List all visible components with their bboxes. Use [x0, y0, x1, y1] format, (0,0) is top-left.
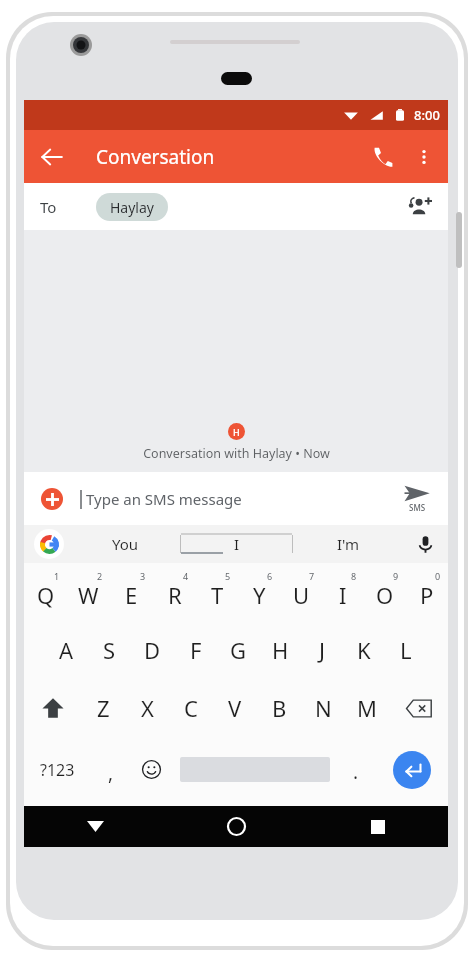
staticText: K: [357, 635, 371, 665]
staticText: Z: [97, 693, 110, 723]
button[interactable]: Enter: [375, 737, 448, 802]
staticText: J: [319, 635, 326, 665]
staticText: 2: [97, 570, 103, 582]
staticText: SMS: [409, 502, 426, 513]
button[interactable]: I'm: [293, 525, 404, 563]
staticText: Type an SMS message: [86, 489, 242, 509]
button[interactable]: E: [110, 563, 153, 621]
button[interactable]: Y: [238, 563, 280, 621]
button[interactable]: More options: [404, 137, 444, 177]
staticText: O: [376, 580, 394, 610]
button[interactable]: P: [406, 563, 448, 621]
staticText: 8:00: [414, 106, 440, 124]
button[interactable]: R: [153, 563, 196, 621]
button[interactable]: You: [70, 525, 180, 563]
button[interactable]: ?123: [24, 737, 91, 802]
staticText: N: [315, 693, 332, 723]
button[interactable]: Recent apps: [307, 806, 448, 847]
staticText: L: [400, 635, 412, 665]
button[interactable]: W: [67, 563, 110, 621]
button[interactable]: Voice input: [410, 529, 440, 559]
button[interactable]: Haylay: [96, 193, 168, 221]
staticText: Q: [37, 580, 55, 610]
button[interactable]: M: [345, 679, 389, 737]
staticText: A: [59, 635, 74, 665]
staticText: You: [112, 534, 139, 554]
staticText: B: [272, 693, 287, 723]
staticText: 1: [54, 570, 60, 582]
button[interactable]: U: [280, 563, 322, 621]
button[interactable]: X: [125, 679, 169, 737]
staticText: P: [420, 580, 434, 610]
button[interactable]: V: [213, 679, 257, 737]
staticText: 8: [351, 570, 357, 582]
staticText: ?123: [40, 759, 75, 781]
button[interactable]: I: [322, 563, 364, 621]
staticText: D: [144, 635, 161, 665]
staticText: I'm: [337, 534, 360, 554]
staticText: W: [78, 580, 99, 610]
button[interactable]: Back: [32, 137, 72, 177]
staticText: I: [234, 534, 240, 554]
button[interactable]: D: [131, 621, 174, 679]
button[interactable]: T: [196, 563, 238, 621]
staticText: I: [339, 580, 347, 610]
staticText: Conversation: [96, 144, 215, 170]
staticText: Y: [253, 580, 266, 610]
staticText: X: [141, 693, 154, 723]
staticText: U: [293, 580, 310, 610]
staticText: F: [190, 635, 202, 665]
button[interactable]: Add attachment: [34, 481, 70, 517]
staticText: M: [357, 693, 377, 723]
staticText: 0: [435, 570, 441, 582]
staticText: G: [230, 635, 247, 665]
staticText: To: [40, 197, 57, 217]
staticText: H: [233, 426, 240, 438]
button[interactable]: J: [301, 621, 343, 679]
staticText: Haylay: [110, 198, 154, 217]
staticText: 6: [267, 570, 273, 582]
button[interactable]: K: [343, 621, 385, 679]
button[interactable]: Send SMS: [396, 485, 438, 513]
button[interactable]: L: [385, 621, 427, 679]
staticText: S: [103, 635, 116, 665]
button[interactable]: .: [336, 737, 375, 802]
button[interactable]: C: [169, 679, 213, 737]
button[interactable]: F: [174, 621, 217, 679]
staticText: 7: [309, 570, 315, 582]
staticText: C: [184, 693, 198, 723]
staticText: 5: [225, 570, 231, 582]
button[interactable]: O: [364, 563, 406, 621]
staticText: 9: [393, 570, 399, 582]
button[interactable]: Call: [362, 136, 404, 178]
button[interactable]: S: [88, 621, 131, 679]
button[interactable]: Backspace: [389, 679, 448, 737]
staticText: R: [168, 580, 182, 610]
staticText: Conversation with Haylay • Now: [143, 445, 330, 462]
button[interactable]: Add people: [400, 187, 440, 227]
button[interactable]: A: [45, 621, 88, 679]
staticText: E: [125, 580, 138, 610]
staticText: ,: [108, 760, 114, 786]
button[interactable]: N: [301, 679, 345, 737]
button[interactable]: I: [181, 534, 292, 554]
staticText: 4: [183, 570, 189, 582]
button[interactable]: Google: [34, 529, 64, 559]
button[interactable]: H: [259, 621, 301, 679]
button[interactable]: Emoji: [130, 737, 173, 802]
button[interactable]: ,: [91, 737, 130, 802]
staticText: 3: [140, 570, 146, 582]
staticText: .: [353, 759, 359, 785]
button[interactable]: Home: [166, 806, 307, 847]
button[interactable]: Z: [82, 679, 125, 737]
button[interactable]: Back: [24, 806, 166, 847]
button[interactable]: G: [217, 621, 259, 679]
staticText: H: [272, 635, 289, 665]
button[interactable]: B: [257, 679, 301, 737]
staticText: V: [228, 693, 242, 723]
button[interactable]: Shift: [24, 679, 82, 737]
button[interactable]: Q: [24, 563, 67, 621]
button[interactable]: Space: [173, 737, 336, 802]
staticText: T: [211, 580, 224, 610]
